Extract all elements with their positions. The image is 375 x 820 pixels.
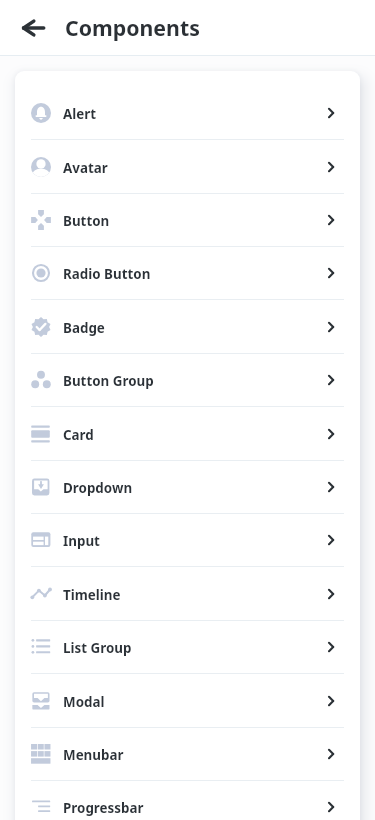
button[interactable]: Menubar	[15, 728, 360, 781]
button[interactable]: List Group	[15, 621, 360, 674]
staticText: Avatar	[63, 159, 108, 177]
staticText: Dropdown	[63, 479, 133, 497]
staticText: Radio Button	[63, 265, 151, 283]
button[interactable]: Timeline	[15, 567, 360, 621]
staticText: Button Group	[63, 372, 154, 390]
button[interactable]: Input	[15, 514, 360, 567]
button[interactable]: Back	[11, 5, 55, 49]
button[interactable]: Button	[15, 194, 360, 247]
button[interactable]: Radio Button	[15, 247, 360, 300]
button[interactable]: Alert	[15, 87, 360, 140]
button[interactable]: Progressbar	[15, 781, 360, 820]
staticText: Badge	[63, 319, 105, 337]
button[interactable]: Card	[15, 407, 360, 461]
button[interactable]: Modal	[15, 674, 360, 728]
button[interactable]: Avatar	[15, 140, 360, 194]
button[interactable]: Button Group	[15, 354, 360, 407]
staticText: Menubar	[63, 746, 124, 764]
staticText: List Group	[63, 639, 132, 657]
staticText: Button	[63, 212, 110, 230]
staticText: Components	[65, 13, 200, 42]
button[interactable]: Badge	[15, 300, 360, 354]
staticText: Input	[63, 532, 100, 550]
staticText: Timeline	[63, 586, 121, 604]
staticText: Alert	[63, 105, 97, 123]
staticText: Progressbar	[63, 799, 144, 817]
button[interactable]: Dropdown	[15, 461, 360, 514]
staticText: Modal	[63, 693, 105, 711]
staticText: Card	[63, 426, 94, 444]
